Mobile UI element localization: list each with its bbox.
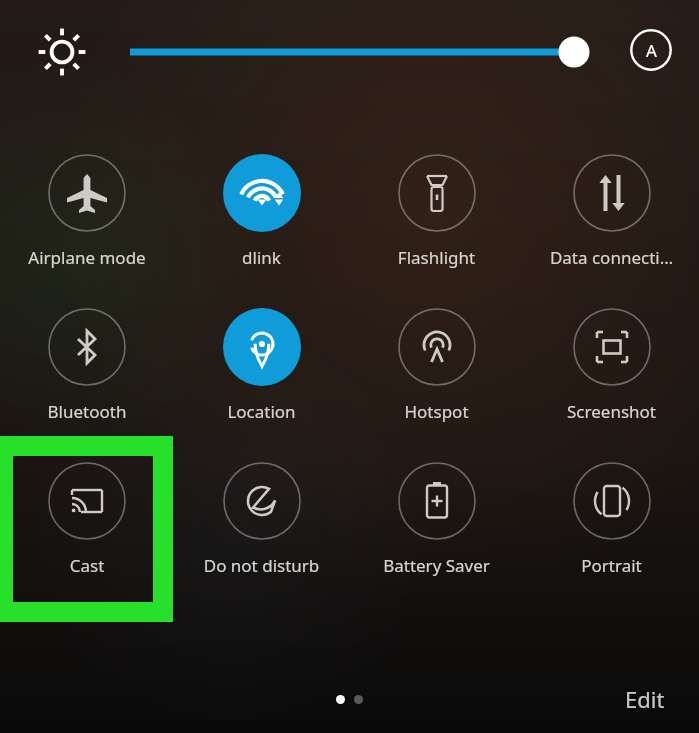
staticText: Location — [176, 400, 347, 423]
button[interactable]: Auto brightness — [627, 26, 675, 74]
button[interactable]: Data connecti… — [524, 148, 699, 278]
button[interactable]: Bluetooth — [0, 302, 174, 432]
button[interactable]: Cast — [0, 456, 174, 586]
staticText: Screenshot — [526, 400, 697, 423]
staticText: Flashlight — [351, 246, 522, 269]
button[interactable]: Brightness — [36, 26, 88, 78]
staticText: Do not disturb — [176, 554, 347, 577]
button[interactable]: Airplane mode — [0, 148, 174, 278]
staticText: A — [646, 39, 657, 62]
staticText: Bluetooth — [2, 400, 172, 423]
staticText: Airplane mode — [2, 246, 172, 269]
button[interactable]: Brightness slider — [122, 28, 592, 76]
staticText: Cast — [2, 554, 172, 577]
button[interactable]: Battery Saver — [349, 456, 524, 586]
staticText: dlink — [176, 246, 347, 269]
button[interactable]: Location — [174, 302, 349, 432]
staticText: Hotspot — [351, 400, 522, 423]
button[interactable]: Edit — [615, 676, 675, 722]
staticText: Data connecti… — [526, 246, 697, 269]
staticText: Edit — [625, 684, 665, 714]
button[interactable]: Hotspot — [349, 302, 524, 432]
button[interactable]: Screenshot — [524, 302, 699, 432]
button[interactable]: Do not disturb — [174, 456, 349, 586]
button[interactable]: Flashlight — [349, 148, 524, 278]
staticText: Portrait — [526, 554, 697, 577]
button[interactable]: Portrait — [524, 456, 699, 586]
button[interactable]: dlink — [174, 148, 349, 278]
staticText: Battery Saver — [351, 554, 522, 577]
